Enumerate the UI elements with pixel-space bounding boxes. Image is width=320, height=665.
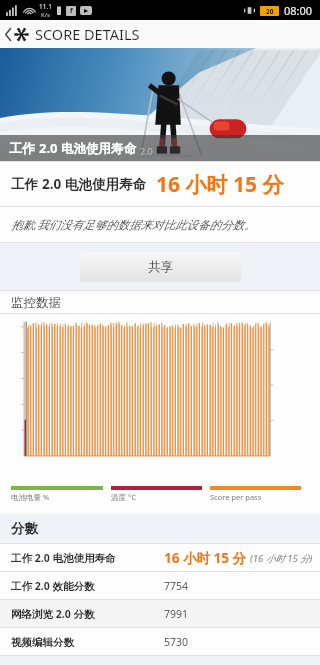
button[interactable]: 网络浏览 2.0 分数 xyxy=(0,600,320,628)
button[interactable]: 工作 2.0 效能分数 xyxy=(0,572,320,600)
staticText: 2.0 xyxy=(140,145,153,157)
staticText: 监控数据 xyxy=(11,295,61,311)
staticText: 2.0 xyxy=(42,175,65,193)
staticText: 20 xyxy=(266,7,274,16)
staticText: 5730 xyxy=(164,635,189,649)
staticText: 7991 xyxy=(164,607,189,621)
staticText: 工作 2.0 效能分数 xyxy=(11,579,95,593)
staticText: 视频编辑分数 xyxy=(11,636,74,649)
staticText: 16 小时 15 分 xyxy=(156,170,284,199)
staticText: SCORE DETAILS xyxy=(35,24,140,44)
staticText: 电池使用寿命 xyxy=(61,141,136,157)
button[interactable]: 工作 2.0 电池使用寿命 xyxy=(0,544,320,572)
staticText: 08:00 xyxy=(284,3,313,18)
staticText: 2.0 xyxy=(39,139,61,157)
staticText: 7754 xyxy=(164,579,189,593)
staticText: K/s xyxy=(41,11,50,19)
staticText: 分數 xyxy=(11,520,38,537)
staticText: 工作 xyxy=(11,175,42,193)
staticText: 工作 xyxy=(9,139,39,157)
staticText: (16 小时 15 分) xyxy=(250,552,313,565)
staticText: 温度 °C xyxy=(111,492,136,502)
staticText: 11.1 xyxy=(39,2,52,11)
button[interactable]: 视频编辑分数 xyxy=(0,628,320,656)
staticText: 网络浏览 2.0 分数 xyxy=(11,607,95,621)
staticText: 16 小时 15 分 xyxy=(164,549,246,567)
button[interactable]: 共享 xyxy=(80,252,241,282)
staticText: 电池电量 % xyxy=(11,492,50,502)
button[interactable]: Back xyxy=(0,20,320,48)
other: Back xyxy=(5,28,12,41)
staticText: Score per pass xyxy=(210,492,262,502)
staticText: 共享 xyxy=(148,259,173,275)
staticText: f xyxy=(70,6,73,16)
staticText: 工作 2.0 电池使用寿命 xyxy=(11,551,116,565)
staticText: 抱歉,我们没有足够的数据来对比此设备的分数。 xyxy=(11,217,256,233)
staticText: 电池使用寿命 xyxy=(65,176,146,193)
